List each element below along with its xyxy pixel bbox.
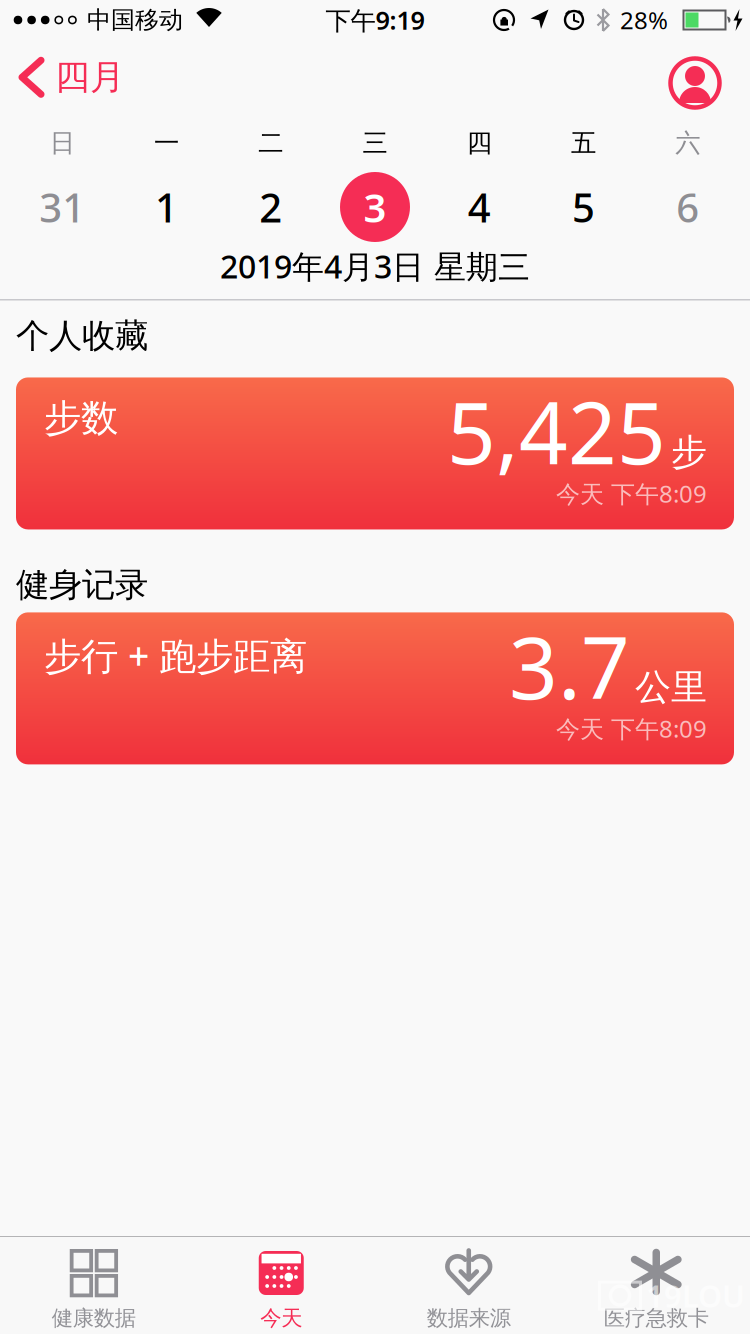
staticText: 5 — [572, 180, 595, 233]
staticText: 步行 + 跑步距离 — [44, 630, 307, 680]
staticText: 6 — [676, 180, 699, 233]
button[interactable]: 四月 — [0, 56, 125, 99]
staticText: 个人收藏 — [16, 315, 148, 356]
staticText: 2019年4月3日 星期三 — [220, 245, 530, 287]
staticText: 今天 下午8:09 — [556, 478, 707, 509]
button[interactable]: 今天 — [187, 1249, 375, 1331]
staticText: 今天 下午8:09 — [556, 712, 707, 744]
staticText: 四 — [467, 127, 492, 158]
button[interactable]: 1 — [114, 170, 219, 244]
button[interactable]: 步行 + 跑步距离 — [16, 612, 734, 764]
staticText: 28% — [620, 4, 668, 36]
button[interactable]: 健康数据 — [0, 1249, 187, 1331]
staticText: 三 — [362, 127, 387, 158]
staticText: 数据来源 — [427, 1305, 511, 1331]
button[interactable]: 6 — [636, 170, 740, 244]
staticText: 六 — [675, 127, 700, 158]
staticText: 19LOU — [646, 1275, 745, 1316]
button[interactable]: 数据来源 — [375, 1249, 562, 1331]
staticText: 31 — [39, 180, 85, 233]
staticText: 公里 — [635, 665, 707, 709]
staticText: 四月 — [55, 56, 125, 99]
button[interactable]: 2 — [219, 170, 323, 244]
staticText: 5,425 — [447, 374, 666, 488]
staticText: 步数 — [44, 395, 118, 441]
staticText: 健身记录 — [16, 564, 148, 605]
staticText: 4 — [468, 180, 491, 233]
button[interactable]: 5 — [531, 170, 636, 244]
staticText: 中国移动 — [87, 5, 183, 35]
button[interactable]: 3 — [323, 170, 427, 244]
staticText: 一 — [154, 127, 179, 158]
staticText: 健康数据 — [52, 1305, 136, 1331]
staticText: 1 — [155, 180, 178, 233]
staticText: 今天 — [260, 1305, 302, 1331]
staticText: 3.7 — [509, 609, 630, 723]
button[interactable]: 4 — [427, 170, 531, 244]
staticText: 五 — [571, 127, 596, 158]
button[interactable] — [668, 56, 722, 110]
button[interactable]: 医疗急救卡 — [562, 1249, 750, 1331]
staticText: 步 — [671, 430, 707, 474]
staticText: 2 — [259, 180, 282, 233]
staticText: 下午9:19 — [325, 3, 424, 37]
staticText: 医疗急救卡 — [604, 1305, 709, 1331]
staticText: 3 — [363, 180, 386, 233]
button[interactable]: 步数 — [16, 377, 734, 529]
staticText: 二 — [258, 127, 283, 158]
button[interactable]: 31 — [10, 170, 114, 244]
staticText: 日 — [50, 127, 75, 158]
